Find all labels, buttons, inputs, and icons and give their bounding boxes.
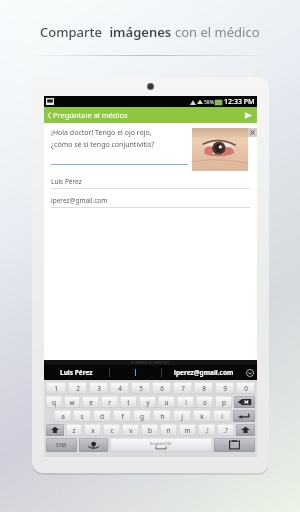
button[interactable]: i — [177, 396, 194, 408]
staticText: d — [100, 412, 104, 421]
staticText: lperez@gmail.com — [51, 196, 108, 205]
button[interactable]: s — [73, 410, 91, 422]
button[interactable]: 6 — [152, 382, 171, 394]
button[interactable]: h — [153, 410, 171, 422]
button[interactable]: 2 — [68, 382, 87, 394]
button[interactable]: v — [122, 424, 139, 436]
staticText: i — [185, 398, 187, 407]
staticText: v — [129, 426, 133, 435]
button[interactable]: f — [113, 410, 131, 422]
staticText: u — [164, 398, 169, 407]
staticText: x — [91, 426, 95, 435]
staticText: SYM — [56, 442, 67, 449]
staticText: b — [148, 426, 152, 435]
button[interactable]: r — [101, 396, 118, 408]
button[interactable]: g — [133, 410, 151, 422]
staticText: f — [121, 412, 124, 421]
button[interactable]: ,! — [198, 424, 215, 436]
staticText: p — [222, 398, 226, 407]
staticText: h — [160, 412, 165, 421]
staticText: POWERED BY SWIFTKEY — [131, 360, 170, 365]
staticText: o — [203, 398, 207, 407]
button[interactable]: j — [173, 410, 191, 422]
button[interactable] — [110, 369, 161, 376]
staticText: lperez@gmail.com — [174, 368, 234, 377]
button[interactable]: Back — [44, 111, 53, 120]
staticText: k — [200, 412, 204, 421]
button[interactable]: 0 — [236, 382, 255, 394]
staticText: w — [69, 398, 75, 407]
staticText: 0 — [244, 384, 248, 393]
button[interactable]: 1 — [46, 382, 66, 394]
button[interactable]: Enter — [233, 410, 255, 422]
staticText: 6 — [160, 384, 164, 393]
button[interactable]: w — [64, 396, 80, 408]
staticText: e — [89, 398, 93, 407]
button[interactable]: 8 — [194, 382, 213, 394]
button[interactable]: Shift — [46, 424, 64, 436]
button[interactable]: lperez@gmail.com — [162, 368, 245, 377]
staticText: n — [166, 426, 171, 435]
button[interactable]: 4 — [110, 382, 129, 394]
staticText: 8 — [202, 384, 206, 393]
staticText: 5 — [139, 384, 143, 393]
staticText: ,! — [205, 426, 209, 435]
button[interactable]: 3 — [89, 382, 108, 394]
button[interactable]: .? — [217, 424, 234, 436]
staticText: 1 — [54, 384, 58, 393]
staticText: t — [127, 398, 130, 407]
button[interactable]: Shift — [236, 424, 255, 436]
button[interactable]: d — [93, 410, 111, 422]
button[interactable]: u — [158, 396, 175, 408]
button[interactable]: y — [139, 396, 156, 408]
button[interactable]: Voice input — [79, 438, 108, 452]
button[interactable]: e — [82, 396, 99, 408]
button[interactable]: m — [179, 424, 196, 436]
staticText: a — [61, 412, 65, 421]
button[interactable]: c — [103, 424, 120, 436]
button[interactable]: SYM — [46, 438, 77, 452]
button[interactable]: o — [196, 396, 213, 408]
staticText: 9 — [223, 384, 227, 393]
staticText: con el médico — [175, 23, 260, 41]
staticText: g — [140, 412, 144, 421]
staticText: 58% — [204, 99, 214, 106]
button[interactable]: More suggestions — [245, 368, 257, 377]
button[interactable]: 9 — [215, 382, 234, 394]
staticText: l — [221, 412, 223, 421]
staticText: c — [110, 426, 114, 435]
staticText: r — [108, 398, 111, 407]
staticText: ¿cómo sé si tengo conjuntivitis? — [51, 140, 155, 150]
button[interactable]: Remove image — [248, 128, 257, 137]
button[interactable]: English(US) — [110, 438, 212, 452]
button[interactable]: Pregúntale al médico — [53, 110, 244, 120]
button[interactable]: Luis Pérez — [44, 368, 109, 377]
staticText: Luis Pérez — [60, 368, 93, 377]
button[interactable]: Luis Pérez — [44, 177, 257, 189]
staticText: q — [52, 398, 56, 407]
button[interactable]: a — [54, 410, 71, 422]
button[interactable]: p — [215, 396, 232, 408]
button[interactable]: t — [120, 396, 137, 408]
button[interactable]: Clipboard — [214, 438, 255, 452]
staticText: j — [181, 412, 183, 421]
button[interactable]: x — [84, 424, 101, 436]
staticText: 4 — [118, 384, 122, 393]
staticText: Comparte — [40, 23, 106, 41]
button[interactable]: 7 — [173, 382, 192, 394]
button[interactable]: k — [193, 410, 211, 422]
button[interactable]: n — [160, 424, 177, 436]
button[interactable]: b — [141, 424, 158, 436]
staticText: Luis Pérez — [51, 177, 82, 186]
button[interactable]: z — [66, 424, 82, 436]
button[interactable]: Backspace — [234, 396, 255, 408]
staticText: 12:33 PM — [224, 97, 255, 107]
staticText: z — [72, 426, 76, 435]
button[interactable]: Send — [244, 111, 257, 120]
button[interactable]: lperez@gmail.com — [44, 196, 257, 208]
button[interactable]: l — [213, 410, 231, 422]
button[interactable]: 5 — [131, 382, 150, 394]
staticText: English(US) — [150, 441, 172, 446]
button[interactable]: q — [46, 396, 62, 408]
staticText: 2 — [76, 384, 80, 393]
